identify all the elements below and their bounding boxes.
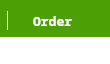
- button[interactable]: Cursor: [0, 0, 110, 37]
- staticText: Order: [33, 12, 73, 30]
